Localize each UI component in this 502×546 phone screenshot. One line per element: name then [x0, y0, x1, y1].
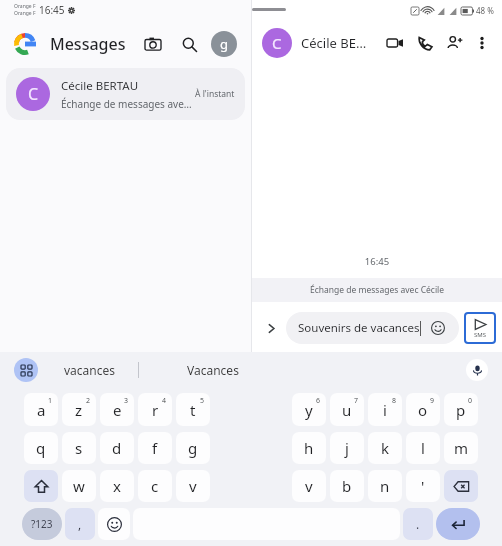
- button[interactable]: .: [403, 508, 433, 540]
- button[interactable]: d: [100, 432, 134, 464]
- staticText: 16:45: [252, 255, 502, 268]
- staticText: Cécile BE…: [301, 34, 367, 52]
- button[interactable]: w: [62, 470, 96, 502]
- staticText: h: [304, 438, 314, 458]
- staticText: i: [383, 400, 387, 420]
- button[interactable]: y: [292, 393, 326, 426]
- staticText: o: [418, 400, 428, 420]
- staticText: k: [381, 438, 390, 458]
- staticText: u: [342, 400, 352, 420]
- button[interactable]: q: [24, 432, 58, 464]
- staticText: C: [28, 83, 39, 105]
- button[interactable]: o: [406, 393, 440, 426]
- button[interactable]: Vacances: [187, 362, 239, 378]
- button[interactable]: Camera: [139, 30, 167, 58]
- staticText: Orange F: [14, 10, 36, 17]
- button[interactable]: Emoji: [429, 319, 447, 337]
- button[interactable]: l: [406, 432, 440, 464]
- staticText: Souvenirs de vacances: [298, 320, 420, 336]
- staticText: d: [112, 438, 122, 458]
- button[interactable]: vacances: [64, 362, 116, 378]
- button[interactable]: Keyboard tools: [14, 358, 38, 382]
- staticText: s: [75, 438, 83, 458]
- button[interactable]: C: [6, 68, 245, 120]
- staticText: À l'instant: [195, 88, 235, 100]
- button[interactable]: k: [368, 432, 402, 464]
- staticText: w: [73, 476, 85, 496]
- button[interactable]: ?123: [22, 508, 62, 540]
- staticText: c: [151, 476, 159, 496]
- staticText: q: [36, 438, 46, 458]
- button[interactable]: Search: [175, 30, 203, 58]
- staticText: n: [380, 476, 390, 496]
- staticText: x: [113, 476, 121, 496]
- staticText: f: [152, 438, 158, 458]
- staticText: 5: [200, 396, 205, 406]
- button[interactable]: Add people: [442, 30, 468, 56]
- button[interactable]: i: [368, 393, 402, 426]
- button[interactable]: h: [292, 432, 326, 464]
- button[interactable]: Voice input: [466, 359, 488, 381]
- button[interactable]: t: [176, 393, 210, 426]
- button[interactable]: Video call: [382, 30, 408, 56]
- button[interactable]: b: [330, 470, 364, 502]
- button[interactable]: Backspace: [444, 470, 478, 502]
- staticText: 2: [86, 396, 91, 406]
- button[interactable]: a: [24, 393, 58, 426]
- staticText: b: [342, 476, 352, 496]
- staticText: 7: [354, 396, 359, 406]
- staticText: g: [188, 438, 198, 458]
- staticText: 8: [392, 396, 397, 406]
- button[interactable]: x: [100, 470, 134, 502]
- staticText: t: [190, 400, 196, 420]
- button[interactable]: m: [444, 432, 478, 464]
- button[interactable]: r: [138, 393, 172, 426]
- staticText: ?123: [31, 517, 53, 531]
- button[interactable]: Expand: [258, 315, 284, 341]
- button[interactable]: c: [138, 470, 172, 502]
- button[interactable]: ,: [65, 508, 95, 540]
- button[interactable]: Emoji: [98, 508, 130, 540]
- staticText: C: [272, 33, 282, 53]
- button[interactable]: v: [176, 470, 210, 502]
- button[interactable]: z: [62, 393, 96, 426]
- staticText: e: [113, 400, 122, 420]
- staticText: v: [189, 476, 197, 496]
- button[interactable]: Shift: [24, 470, 58, 502]
- staticText: 9: [430, 396, 435, 406]
- button[interactable]: ': [406, 470, 440, 502]
- button[interactable]: p: [444, 393, 478, 426]
- button[interactable]: More options: [470, 31, 494, 55]
- button[interactable]: v: [292, 470, 326, 502]
- staticText: a: [37, 400, 46, 420]
- staticText: 0: [468, 396, 473, 406]
- staticText: m: [454, 438, 469, 458]
- button[interactable]: C: [262, 28, 292, 58]
- staticText: g: [220, 35, 228, 53]
- staticText: 4: [162, 396, 167, 406]
- button[interactable]: s: [62, 432, 96, 464]
- button[interactable]: Enter: [436, 508, 480, 540]
- staticText: ,: [78, 516, 82, 532]
- staticText: 3: [124, 396, 129, 406]
- button[interactable]: Account: [211, 31, 237, 57]
- button[interactable]: f: [138, 432, 172, 464]
- button[interactable]: Souvenirs de vacances: [286, 312, 459, 344]
- staticText: j: [345, 438, 349, 458]
- button[interactable]: n: [368, 470, 402, 502]
- button[interactable]: j: [330, 432, 364, 464]
- button[interactable]: Call: [412, 30, 438, 56]
- button[interactable]: e: [100, 393, 134, 426]
- staticText: 6: [316, 396, 321, 406]
- staticText: p: [456, 400, 466, 420]
- staticText: 1: [48, 396, 53, 406]
- staticText: SMS: [474, 331, 487, 339]
- staticText: 48 %: [476, 5, 494, 16]
- button[interactable]: Send SMS: [466, 314, 494, 342]
- staticText: y: [305, 400, 313, 420]
- staticText: .: [416, 516, 420, 532]
- button[interactable]: g: [176, 432, 210, 464]
- button[interactable]: u: [330, 393, 364, 426]
- staticText: Orange F: [14, 3, 36, 10]
